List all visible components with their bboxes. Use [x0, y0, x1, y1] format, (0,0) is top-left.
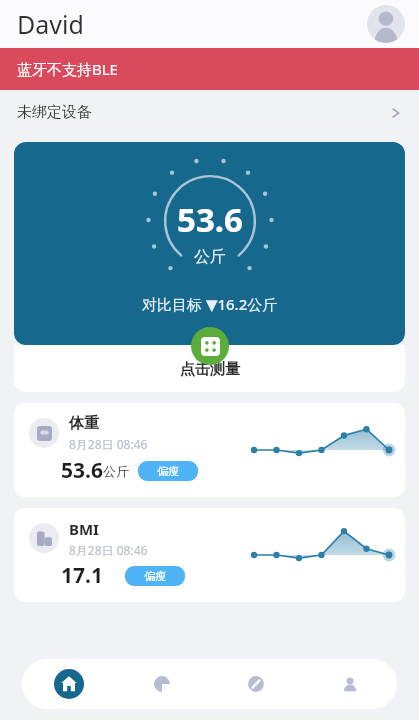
- staticText: 对比目标 ▼16.2公斤: [142, 294, 278, 314]
- staticText: 未绑定设备: [17, 103, 92, 122]
- button[interactable]: BMI: [14, 508, 405, 602]
- staticText: 17.1: [61, 561, 103, 590]
- button[interactable]: Profile: [303, 659, 397, 709]
- button[interactable]: Profile: [367, 5, 405, 43]
- staticText: 偏瘦: [157, 464, 179, 478]
- button[interactable]: Explore: [209, 659, 303, 709]
- staticText: 53.6: [177, 197, 243, 242]
- staticText: 点击测量: [180, 360, 240, 379]
- button[interactable]: Home: [22, 659, 115, 709]
- staticText: 8月28日 08:46: [69, 436, 148, 452]
- button[interactable]: 未绑定设备: [0, 90, 419, 135]
- staticText: 公斤: [194, 247, 226, 267]
- staticText: 53.6: [61, 456, 103, 485]
- button[interactable]: 体重: [14, 403, 405, 497]
- staticText: 体重: [69, 414, 99, 433]
- staticText: BMI: [69, 519, 99, 539]
- button[interactable]: Measure: [191, 327, 229, 365]
- staticText: 8月28日 08:46: [69, 542, 148, 558]
- staticText: David: [17, 7, 84, 41]
- staticText: 偏瘦: [144, 569, 166, 583]
- staticText: 蓝牙不支持BLE: [17, 59, 118, 79]
- staticText: 公斤: [103, 463, 129, 479]
- button[interactable]: Statistics: [115, 659, 209, 709]
